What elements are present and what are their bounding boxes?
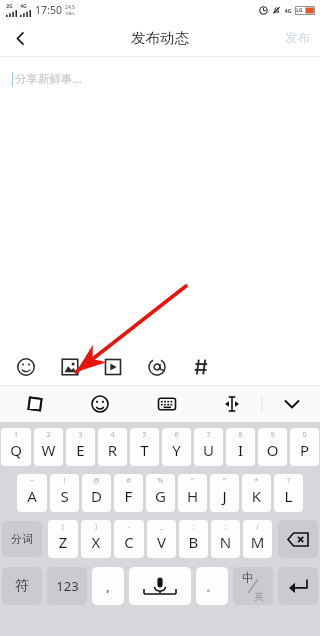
staticText: 9 bbox=[258, 430, 287, 440]
button[interactable]: 分词 bbox=[2, 521, 42, 557]
button[interactable]: Hide keyboard bbox=[275, 388, 309, 420]
button[interactable]: Back bbox=[0, 20, 40, 56]
staticText: 0 bbox=[290, 430, 319, 440]
staticText: X bbox=[81, 532, 111, 552]
staticText: 17:50 bbox=[35, 3, 62, 17]
staticText: M bbox=[243, 532, 272, 552]
button[interactable]: ” bbox=[210, 474, 239, 512]
staticText: O bbox=[258, 440, 287, 460]
button[interactable]: 7 bbox=[194, 428, 223, 466]
staticText: 2G bbox=[6, 3, 13, 10]
staticText: LG bbox=[296, 7, 303, 14]
button[interactable]: 8 bbox=[226, 428, 255, 466]
staticText: Y bbox=[162, 440, 191, 460]
staticText: “ bbox=[178, 476, 207, 486]
staticText: 。 bbox=[206, 579, 218, 594]
button[interactable]: ) bbox=[81, 520, 111, 558]
staticText: 4G bbox=[284, 7, 292, 14]
button[interactable]: 123 bbox=[47, 567, 87, 605]
staticText: Q bbox=[1, 440, 31, 460]
staticText: S bbox=[50, 486, 79, 506]
button[interactable]: Backspace bbox=[278, 520, 318, 558]
button[interactable]: 6 bbox=[162, 428, 191, 466]
staticText: N bbox=[211, 532, 240, 552]
staticText: ; bbox=[211, 522, 240, 532]
button[interactable]: 符 bbox=[2, 567, 42, 605]
staticText: 符 bbox=[15, 577, 29, 595]
button[interactable]: 4 bbox=[98, 428, 127, 466]
button[interactable]: 。 bbox=[196, 567, 228, 605]
staticText: 1 bbox=[1, 430, 31, 440]
button[interactable]: Chinese English toggle bbox=[233, 567, 273, 605]
button[interactable]: Photo bbox=[54, 351, 86, 383]
button[interactable]: 2 bbox=[34, 428, 63, 466]
staticText: K bbox=[242, 486, 271, 506]
staticText: - bbox=[114, 522, 144, 532]
staticText: P bbox=[290, 440, 319, 460]
button[interactable]: - bbox=[114, 520, 144, 558]
button[interactable]: Enter bbox=[278, 567, 318, 605]
staticText: ! bbox=[50, 476, 79, 486]
staticText: , bbox=[106, 577, 110, 595]
button[interactable]: Mention bbox=[141, 351, 173, 383]
staticText: 4 bbox=[98, 430, 127, 440]
staticText: U bbox=[194, 440, 223, 460]
button[interactable]: Keyboard layout bbox=[150, 388, 184, 420]
button[interactable]: 3 bbox=[66, 428, 95, 466]
button[interactable]: 0 bbox=[290, 428, 319, 466]
staticText: B bbox=[179, 532, 208, 552]
button[interactable]: ; bbox=[211, 520, 240, 558]
staticText: 分享新鲜事... bbox=[15, 71, 82, 87]
button[interactable]: _ bbox=[147, 520, 176, 558]
button[interactable]: 1 bbox=[1, 428, 31, 466]
staticText: G bbox=[146, 486, 175, 506]
staticText: 5 bbox=[130, 430, 159, 440]
staticText: 7 bbox=[194, 430, 223, 440]
button[interactable]: Space, voice input bbox=[129, 567, 191, 605]
staticText: J bbox=[210, 486, 239, 506]
staticText: V bbox=[147, 532, 176, 552]
button[interactable]: ? bbox=[274, 474, 303, 512]
button[interactable]: 9 bbox=[258, 428, 287, 466]
button[interactable]: # bbox=[114, 474, 143, 512]
button[interactable]: : bbox=[179, 520, 208, 558]
button[interactable]: Emoji bbox=[10, 351, 42, 383]
staticText: * bbox=[242, 476, 271, 486]
staticText: # bbox=[114, 476, 143, 486]
staticText: ( bbox=[48, 522, 78, 532]
button[interactable]: * bbox=[242, 474, 271, 512]
button[interactable]: Move cursor bbox=[215, 388, 249, 420]
staticText: T bbox=[130, 440, 159, 460]
button[interactable]: Video bbox=[97, 351, 129, 383]
staticText: F bbox=[114, 486, 143, 506]
staticText: 4G bbox=[20, 3, 27, 10]
button[interactable]: / bbox=[243, 520, 272, 558]
button[interactable]: % bbox=[146, 474, 175, 512]
staticText: 3 bbox=[66, 430, 95, 440]
staticText: % bbox=[146, 476, 175, 486]
button[interactable]: ~ bbox=[17, 474, 47, 512]
staticText: 中 bbox=[242, 570, 254, 585]
staticText: / bbox=[243, 522, 272, 532]
staticText: 发布动态 bbox=[131, 29, 189, 47]
staticText: R bbox=[98, 440, 127, 460]
staticText: H bbox=[178, 486, 207, 506]
staticText: ? bbox=[274, 476, 303, 486]
button[interactable]: @ bbox=[82, 474, 111, 512]
button[interactable]: ( bbox=[48, 520, 78, 558]
button[interactable]: Emoji bbox=[83, 388, 117, 420]
button[interactable]: Topic bbox=[185, 351, 217, 383]
button[interactable]: ! bbox=[50, 474, 79, 512]
button[interactable]: 发布 bbox=[285, 30, 310, 46]
staticText: 24.5 bbox=[65, 4, 75, 11]
staticText: 6 bbox=[162, 430, 191, 440]
staticText: D bbox=[82, 486, 111, 506]
button[interactable]: , bbox=[92, 567, 124, 605]
staticText: 发布 bbox=[285, 30, 310, 46]
button[interactable]: “ bbox=[178, 474, 207, 512]
button[interactable]: 5 bbox=[130, 428, 159, 466]
button[interactable]: Sogou input bbox=[18, 388, 52, 420]
staticText: L bbox=[274, 486, 303, 506]
staticText: ) bbox=[81, 522, 111, 532]
staticText: C bbox=[114, 532, 144, 552]
